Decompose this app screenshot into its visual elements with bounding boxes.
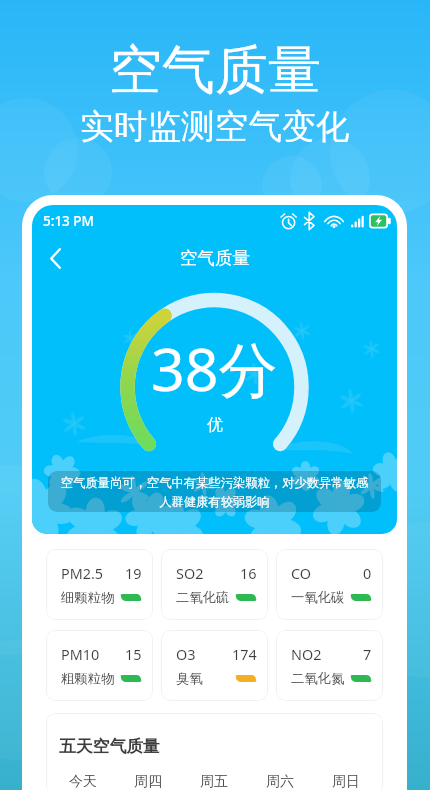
staticText: 细颗粒物	[61, 589, 115, 606]
staticText: SO2	[176, 564, 204, 584]
staticText: 38分	[151, 328, 278, 409]
button[interactable]: O3	[161, 630, 268, 701]
staticText: 空气质量	[109, 37, 321, 104]
button[interactable]: PM10	[46, 630, 153, 701]
staticText: CO	[291, 564, 312, 584]
staticText: 今天	[69, 773, 97, 790]
staticText: 一氧化碳	[291, 589, 345, 606]
button[interactable]: 今天	[50, 765, 115, 790]
staticText: 二氧化氮	[291, 670, 345, 687]
staticText: 粗颗粒物	[61, 670, 115, 687]
staticText: 19	[125, 564, 142, 584]
button[interactable]: NO2	[276, 630, 383, 701]
staticText: 周六	[266, 773, 294, 790]
staticText: 5:13 PM	[43, 212, 94, 230]
button[interactable]: CO	[276, 549, 383, 620]
button[interactable]: SO2	[161, 549, 268, 620]
staticText: 7	[363, 645, 372, 665]
button[interactable]: 周四	[115, 765, 181, 790]
staticText: 臭氧	[176, 670, 203, 687]
staticText: 16	[240, 564, 257, 584]
staticText: NO2	[291, 645, 322, 665]
button[interactable]: 周六	[247, 765, 313, 790]
staticText: 0	[363, 564, 372, 584]
staticText: 周四	[134, 773, 162, 790]
staticText: 174	[232, 645, 257, 665]
staticText: O3	[176, 645, 196, 665]
staticText: 周五	[200, 773, 228, 790]
staticText: 实时监测空气变化	[80, 106, 350, 148]
button[interactable]: 周五	[181, 765, 247, 790]
button[interactable]: Back	[37, 240, 73, 276]
staticText: 15	[125, 645, 142, 665]
staticText: 优	[207, 415, 223, 435]
staticText: PM2.5	[61, 564, 104, 584]
staticText: 周日	[332, 773, 360, 790]
button[interactable]: PM2.5	[46, 549, 153, 620]
staticText: 空气质量	[180, 247, 250, 269]
staticText: 二氧化硫	[176, 589, 230, 606]
staticText: PM10	[61, 645, 100, 665]
staticText: 空气质量尚可，空气中有某些污染颗粒，对少数异常敏感人群健康有较弱影响	[58, 475, 371, 509]
staticText: 五天空气质量	[59, 736, 160, 757]
button[interactable]: 周日	[313, 765, 379, 790]
